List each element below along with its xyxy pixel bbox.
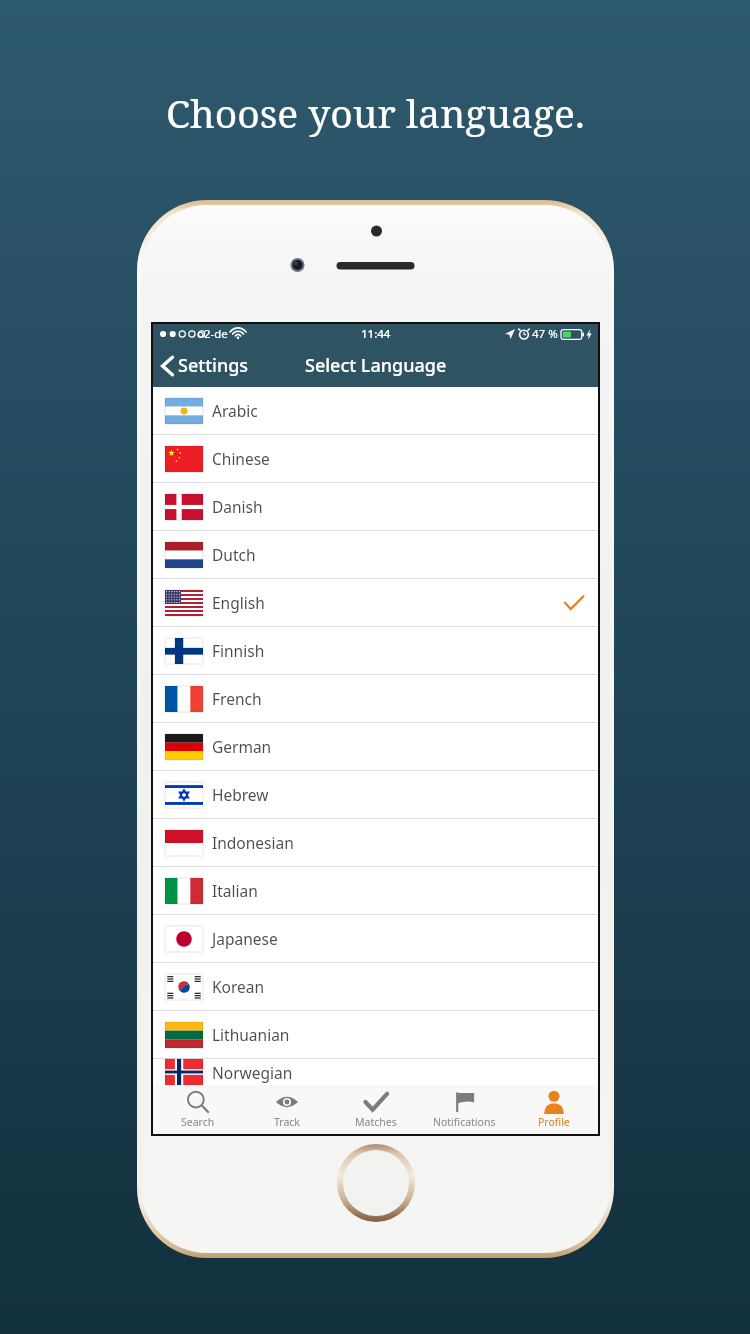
button[interactable]: Danish <box>153 483 598 530</box>
staticText: Notifications <box>433 1115 496 1129</box>
staticText: Danish <box>212 496 263 517</box>
button[interactable]: French <box>153 675 598 722</box>
staticText: o2-de <box>197 326 228 342</box>
staticText: Profile <box>538 1115 570 1129</box>
staticText: Track <box>274 1115 300 1129</box>
button[interactable]: Finnish <box>153 627 598 674</box>
button[interactable]: German <box>153 723 598 770</box>
staticText: Lithuanian <box>212 1024 290 1045</box>
staticText: Choose your language. <box>166 86 585 139</box>
button[interactable]: Japanese <box>153 915 598 962</box>
staticText: Settings <box>178 353 249 378</box>
staticText: 11:44 <box>361 326 391 342</box>
staticText: 47 % <box>532 326 558 342</box>
staticText: English <box>212 592 265 613</box>
staticText: Dutch <box>212 544 256 565</box>
staticText: Chinese <box>212 448 270 469</box>
staticText: Arabic <box>212 400 258 421</box>
button[interactable]: Hebrew <box>153 771 598 818</box>
button[interactable]: Track <box>242 1085 331 1134</box>
staticText: Matches <box>355 1115 397 1129</box>
button[interactable]: Arabic <box>153 387 598 434</box>
staticText: Finnish <box>212 640 265 661</box>
staticText: Italian <box>212 880 258 901</box>
button[interactable]: Matches <box>331 1085 420 1134</box>
button[interactable]: Indonesian <box>153 819 598 866</box>
staticText: Hebrew <box>212 784 269 805</box>
staticText: Japanese <box>212 928 278 949</box>
staticText: French <box>212 688 262 709</box>
button[interactable]: Norwegian <box>153 1059 598 1085</box>
staticText: German <box>212 736 272 757</box>
button[interactable]: English <box>153 579 598 626</box>
button[interactable]: Settings <box>153 347 259 384</box>
staticText: Norwegian <box>212 1062 293 1083</box>
button[interactable]: Lithuanian <box>153 1011 598 1058</box>
button[interactable]: Dutch <box>153 531 598 578</box>
staticText: Search <box>181 1115 215 1129</box>
staticText: Indonesian <box>212 832 294 853</box>
staticText: Select Language <box>305 353 447 378</box>
button[interactable]: Profile <box>509 1085 598 1134</box>
button[interactable]: Korean <box>153 963 598 1010</box>
staticText: Korean <box>212 976 265 997</box>
button[interactable]: Italian <box>153 867 598 914</box>
button[interactable]: Notifications <box>420 1085 509 1134</box>
button[interactable]: Search <box>153 1085 242 1134</box>
button[interactable]: Chinese <box>153 435 598 482</box>
